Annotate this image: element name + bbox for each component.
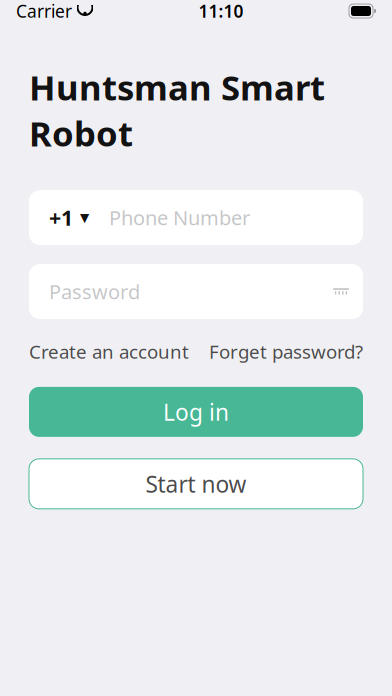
- staticText: Huntsman Smart Robot: [29, 64, 325, 156]
- staticText: Start now: [145, 469, 246, 499]
- button[interactable]: +1: [29, 190, 101, 245]
- staticText: ▼: [80, 211, 89, 224]
- staticText: Phone Number: [109, 204, 250, 231]
- button[interactable]: Create an account: [29, 333, 189, 370]
- button[interactable]: Show password: [319, 264, 363, 319]
- staticText: Password: [49, 278, 140, 305]
- staticText: 11:10: [198, 0, 243, 22]
- staticText: Log in: [163, 397, 229, 427]
- button[interactable]: Forget password?: [209, 333, 363, 370]
- staticText: Carrier: [16, 0, 72, 22]
- staticText: Forget password?: [209, 339, 363, 364]
- button[interactable]: Log in: [29, 387, 363, 437]
- staticText: +1: [49, 203, 73, 232]
- staticText: Create an account: [29, 339, 189, 364]
- button[interactable]: Start now: [29, 459, 363, 509]
